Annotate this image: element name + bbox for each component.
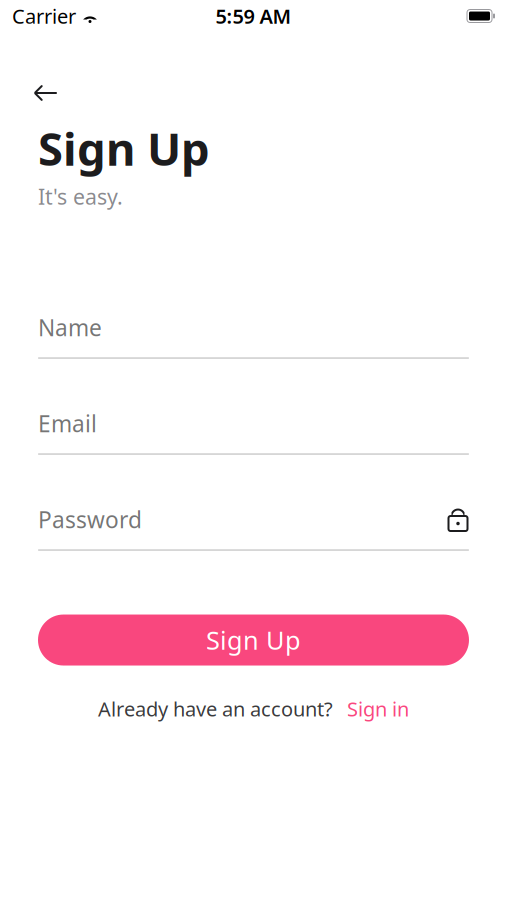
staticText: Sign Up bbox=[38, 118, 210, 178]
staticText: It's easy. bbox=[38, 182, 123, 210]
staticText: Name bbox=[38, 312, 102, 343]
staticText: 5:59 AM bbox=[215, 3, 291, 29]
staticText: Sign Up bbox=[206, 623, 301, 657]
staticText: Sign in bbox=[347, 695, 409, 722]
staticText: Carrier bbox=[12, 3, 76, 29]
staticText: Password bbox=[38, 504, 142, 535]
button[interactable]: Back bbox=[24, 76, 68, 110]
staticText: Email bbox=[38, 408, 97, 439]
button[interactable]: Sign Up bbox=[38, 614, 469, 665]
button[interactable]: Sign in bbox=[333, 689, 409, 728]
staticText: Already have an account? bbox=[98, 695, 333, 722]
